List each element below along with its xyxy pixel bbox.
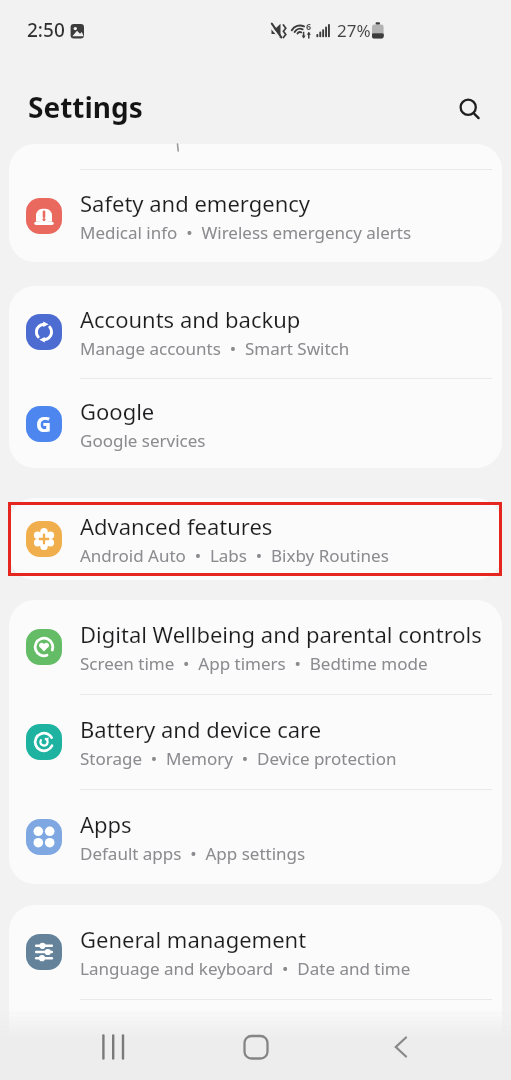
button[interactable] <box>451 90 485 124</box>
staticText: Apps <box>80 809 132 839</box>
button[interactable]: Apps <box>9 790 502 884</box>
staticText: Google <box>80 396 155 426</box>
staticText: 27% <box>337 19 371 42</box>
staticText: General management <box>80 924 307 954</box>
staticText: Android Auto • Labs • Bixby Routines <box>80 544 389 567</box>
button[interactable]: G <box>9 379 502 468</box>
staticText: Language and keyboard • Date and time <box>80 957 411 980</box>
button[interactable] <box>0 1008 171 1080</box>
staticText: Digital Wellbeing and parental controls <box>80 619 482 649</box>
staticText: G <box>36 410 52 439</box>
staticText: Settings <box>28 88 143 126</box>
button[interactable]: Advanced features <box>9 498 502 580</box>
staticText: Screen time • App timers • Bedtime mode <box>80 652 428 675</box>
staticText: Manage accounts • Smart Switch <box>80 337 350 360</box>
staticText: Medical info • Wireless emergency alerts <box>80 221 412 244</box>
button[interactable] <box>341 1008 511 1080</box>
button[interactable]: Battery and device care <box>9 695 502 789</box>
staticText: 2:50 <box>27 17 65 43</box>
button[interactable]: Safety and emergency <box>9 170 502 262</box>
staticText: Storage • Memory • Device protection <box>80 747 397 770</box>
staticText: Safety and emergency <box>80 188 311 218</box>
staticText: Google services <box>80 429 206 452</box>
button[interactable]: Digital Wellbeing and parental controls <box>9 600 502 694</box>
button[interactable] <box>171 1008 341 1080</box>
staticText: Battery and device care <box>80 714 322 744</box>
staticText: 6 <box>306 20 312 32</box>
button[interactable]: General management <box>9 905 502 999</box>
button[interactable]: Accounts and backup <box>9 286 502 378</box>
staticText: Advanced features <box>80 511 273 541</box>
staticText: Default apps • App settings <box>80 842 306 865</box>
staticText: Accounts and backup <box>80 304 301 334</box>
